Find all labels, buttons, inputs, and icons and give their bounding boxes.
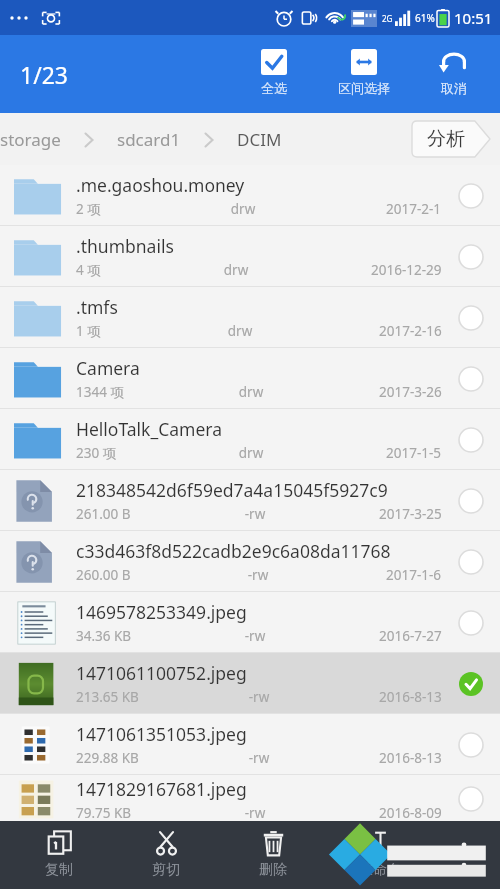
staticText: .me.gaoshou.money bbox=[76, 173, 245, 197]
staticText: drw bbox=[208, 383, 294, 401]
staticText: 全选 bbox=[261, 80, 287, 96]
staticText: 1344 项 bbox=[76, 383, 124, 401]
staticText: 1471829167681.jpeg bbox=[76, 777, 247, 801]
button[interactable]: Select 1471061351053.jpeg bbox=[456, 730, 486, 760]
staticText: 261.00 B bbox=[76, 505, 131, 523]
staticText: 34.36 KB bbox=[76, 627, 132, 645]
staticText: 2017-1-5 bbox=[386, 444, 442, 462]
staticText: 2016-7-27 bbox=[379, 627, 442, 645]
staticText: 2017-3-25 bbox=[379, 505, 442, 523]
staticText: -rw bbox=[216, 688, 302, 706]
button[interactable]: .me.gaoshou.money bbox=[0, 165, 500, 226]
staticText: -rw bbox=[212, 627, 298, 645]
staticText: 230 项 bbox=[76, 444, 117, 462]
staticText: 260.00 B bbox=[76, 566, 131, 584]
staticText: 剪切 bbox=[152, 861, 180, 879]
button[interactable]: 重命名 bbox=[332, 821, 428, 889]
staticText: 1 项 bbox=[76, 322, 101, 340]
button[interactable]: Select .me.gaoshou.money bbox=[456, 181, 486, 211]
staticText: 2017-2-16 bbox=[379, 322, 442, 340]
staticText: c33d463f8d522cadb2e9c6a08da11768 bbox=[76, 539, 391, 563]
staticText: 2016-8-13 bbox=[379, 688, 442, 706]
staticText: 2016-8-09 bbox=[379, 804, 442, 822]
staticText: 删除 bbox=[259, 861, 287, 879]
staticText: 区间选择 bbox=[338, 80, 390, 96]
button[interactable]: Camera bbox=[0, 348, 500, 409]
button[interactable]: 1469578253349.jpeg bbox=[0, 592, 500, 653]
staticText: drw bbox=[208, 444, 294, 462]
staticText: 2 项 bbox=[76, 200, 101, 218]
button[interactable]: .tmfs bbox=[0, 287, 500, 348]
button[interactable]: Select .tmfs bbox=[456, 303, 486, 333]
staticText: 1471061100752.jpeg bbox=[76, 661, 247, 685]
button[interactable]: Select HelloTalk_Camera bbox=[456, 425, 486, 455]
button[interactable]: Select 1471829167681.jpeg bbox=[456, 784, 486, 814]
button[interactable]: 全选 bbox=[234, 35, 314, 113]
staticText: .tmfs bbox=[76, 295, 118, 319]
staticText: 1471061351053.jpeg bbox=[76, 722, 247, 746]
staticText: -rw bbox=[216, 749, 302, 767]
staticText: 2G bbox=[382, 13, 393, 24]
button[interactable]: .thumbnails bbox=[0, 226, 500, 287]
staticText: Camera bbox=[76, 356, 140, 380]
button[interactable]: Select .thumbnails bbox=[456, 242, 486, 272]
button[interactable]: 区间选择 bbox=[314, 35, 414, 113]
staticText: 复制 bbox=[45, 861, 73, 879]
button[interactable]: Select 1471061100752.jpeg bbox=[456, 669, 486, 699]
staticText: drw bbox=[200, 200, 286, 218]
staticText: 2017-3-26 bbox=[379, 383, 442, 401]
staticText: HelloTalk_Camera bbox=[76, 417, 223, 441]
staticText: 79.75 KB bbox=[76, 804, 132, 822]
staticText: 2017-1-6 bbox=[386, 566, 442, 584]
button[interactable]: sdcard1 bbox=[117, 128, 181, 151]
staticText: 4 项 bbox=[76, 261, 101, 279]
staticText: 1/23 bbox=[20, 59, 69, 90]
staticText: drw bbox=[193, 261, 279, 279]
staticText: -rw bbox=[215, 566, 301, 584]
button[interactable]: Select 218348542d6f59ed7a4a15045f5927c9 bbox=[456, 486, 486, 516]
staticText: sdcard1 bbox=[117, 128, 181, 151]
button[interactable]: 取消 bbox=[414, 35, 494, 113]
button[interactable]: Select Camera bbox=[456, 364, 486, 394]
staticText: 分析 bbox=[427, 127, 465, 151]
staticText: 2017-2-1 bbox=[386, 200, 442, 218]
staticText: storage bbox=[0, 128, 61, 151]
staticText: 61% bbox=[415, 11, 435, 25]
button[interactable]: 1471061100752.jpeg bbox=[0, 653, 500, 714]
staticText: 2016-12-29 bbox=[371, 261, 442, 279]
staticText: 10:51 bbox=[454, 8, 493, 28]
button[interactable]: 复制 bbox=[11, 821, 107, 889]
staticText: 取消 bbox=[441, 80, 467, 96]
button[interactable]: HelloTalk_Camera bbox=[0, 409, 500, 470]
button[interactable]: c33d463f8d522cadb2e9c6a08da11768 bbox=[0, 531, 500, 592]
button[interactable]: Select 1469578253349.jpeg bbox=[456, 608, 486, 638]
staticText: -rw bbox=[212, 804, 298, 822]
button[interactable]: 1471061351053.jpeg bbox=[0, 714, 500, 775]
button[interactable]: 剪切 bbox=[118, 821, 214, 889]
staticText: 2016-8-13 bbox=[379, 749, 442, 767]
button[interactable]: 1471829167681.jpeg bbox=[0, 775, 500, 823]
staticText: DCIM bbox=[237, 128, 282, 151]
staticText: 1469578253349.jpeg bbox=[76, 600, 247, 624]
staticText: 213.65 KB bbox=[76, 688, 139, 706]
staticText: .thumbnails bbox=[76, 234, 174, 258]
staticText: drw bbox=[197, 322, 283, 340]
button[interactable]: 218348542d6f59ed7a4a15045f5927c9 bbox=[0, 470, 500, 531]
staticText: -rw bbox=[212, 505, 298, 523]
staticText: 重命名 bbox=[359, 861, 401, 879]
button[interactable]: DCIM bbox=[237, 128, 282, 151]
button[interactable]: More options bbox=[439, 821, 489, 889]
staticText: 229.88 KB bbox=[76, 749, 139, 767]
button[interactable]: storage bbox=[0, 128, 61, 151]
button[interactable]: 删除 bbox=[225, 821, 321, 889]
button[interactable]: Select c33d463f8d522cadb2e9c6a08da11768 bbox=[456, 547, 486, 577]
button[interactable]: 分析 bbox=[412, 121, 490, 157]
staticText: 218348542d6f59ed7a4a15045f5927c9 bbox=[76, 478, 388, 502]
